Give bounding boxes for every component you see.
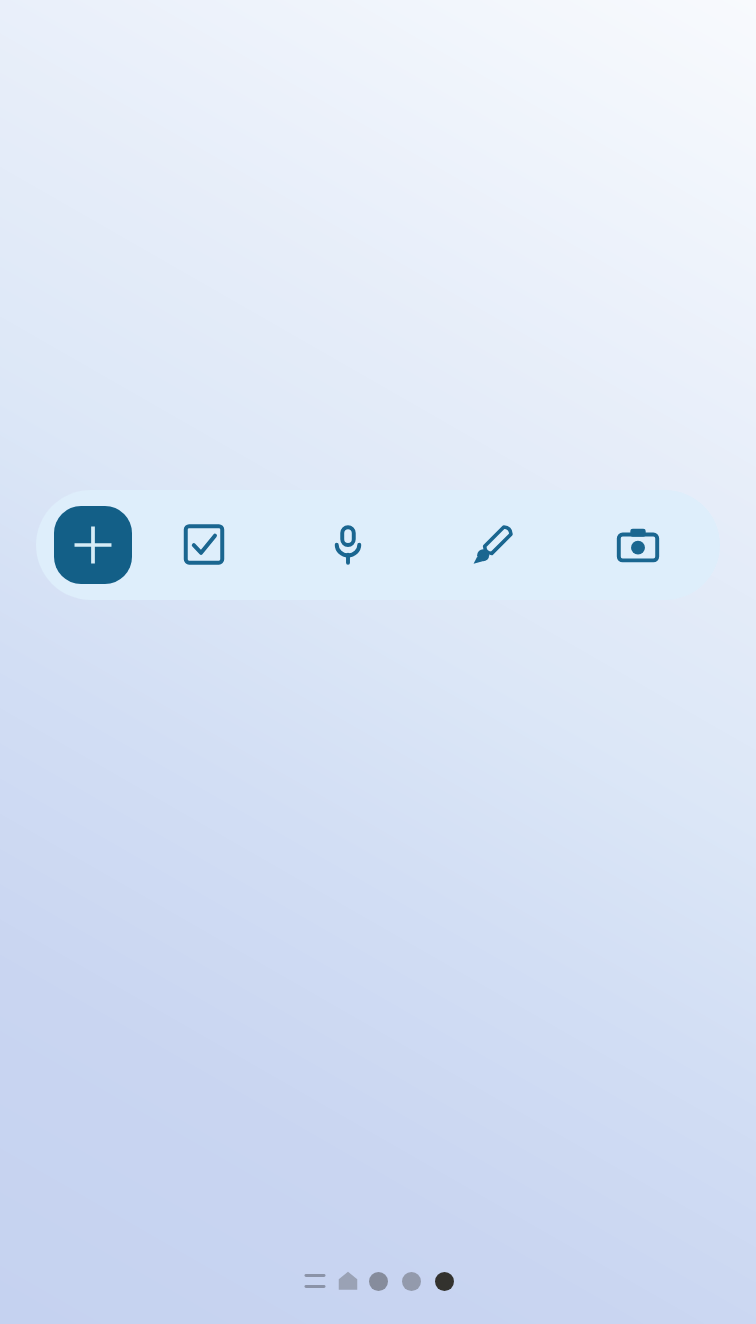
- button[interactable]: Voice note: [276, 490, 420, 600]
- button[interactable]: Add: [54, 506, 132, 584]
- button[interactable]: Tasks: [132, 490, 276, 600]
- button[interactable]: Draw: [420, 490, 565, 600]
- button[interactable]: Camera: [565, 490, 710, 600]
